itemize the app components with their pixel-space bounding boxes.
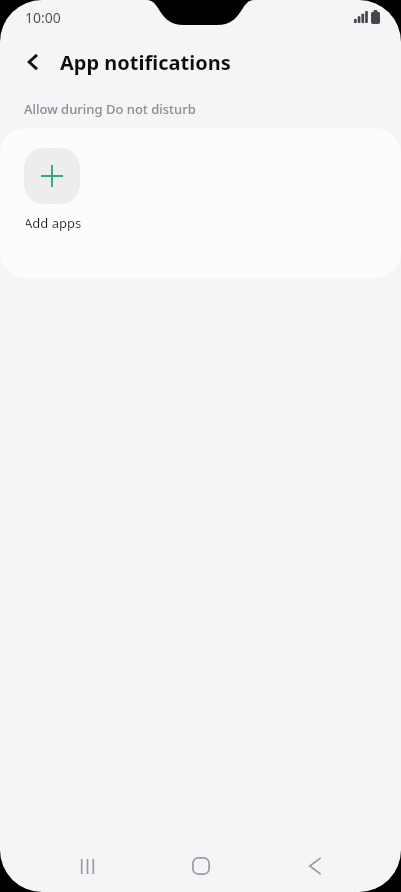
other: Add apps: [24, 148, 80, 204]
button[interactable]: Back: [16, 45, 50, 79]
staticText: Add apps: [24, 214, 82, 232]
staticText: 10:00: [25, 8, 61, 27]
staticText: App notifications: [60, 49, 231, 76]
button[interactable]: Recent apps: [57, 840, 117, 892]
staticText: Allow during Do not disturb: [24, 100, 196, 118]
button[interactable]: Home: [171, 840, 231, 892]
button[interactable]: Add apps: [24, 148, 88, 232]
button[interactable]: Back: [284, 840, 344, 892]
